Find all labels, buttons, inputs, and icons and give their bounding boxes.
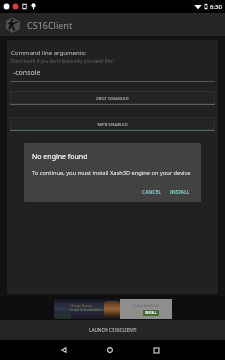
staticText: INSTALL	[170, 189, 190, 196]
staticText: To continue, you must install Xash3D eng…	[32, 169, 191, 177]
button[interactable]: YAPB ENABLED	[10, 117, 215, 131]
staticText: ZBOT DISABLED	[96, 95, 129, 101]
staticText: -console	[13, 68, 41, 78]
staticText: Bunny Battle On	[133, 303, 160, 308]
staticText: to win in tournaments	[70, 308, 104, 312]
staticText: Command line arguments:	[11, 49, 87, 57]
staticText: INSTALL	[145, 311, 157, 315]
staticText: CS16Client	[27, 19, 73, 31]
staticText: 6:30	[210, 3, 222, 11]
staticText: LAUNCH CS16CLIENT!	[89, 327, 137, 333]
button[interactable]: INSTALL	[167, 187, 193, 198]
staticText: YAPB ENABLED	[97, 121, 128, 127]
staticText: CANCEL	[142, 189, 161, 196]
staticText: FREE	[134, 311, 141, 315]
button[interactable]: LAUNCH CS16CLIENT!	[0, 320, 225, 340]
button[interactable]: CANCEL	[139, 187, 164, 198]
button[interactable]: Home	[100, 340, 120, 360]
button[interactable]: ZBOT DISABLED	[10, 91, 215, 105]
staticText: No engine found	[32, 152, 88, 162]
staticText: Don't touch if you don't know why you ne…	[11, 58, 114, 64]
button[interactable]: Recent apps	[146, 340, 166, 360]
button[interactable]: Back	[54, 340, 74, 360]
staticText: Choose Bunny	[70, 304, 92, 308]
button[interactable]: Choose Bunny	[54, 299, 172, 319]
